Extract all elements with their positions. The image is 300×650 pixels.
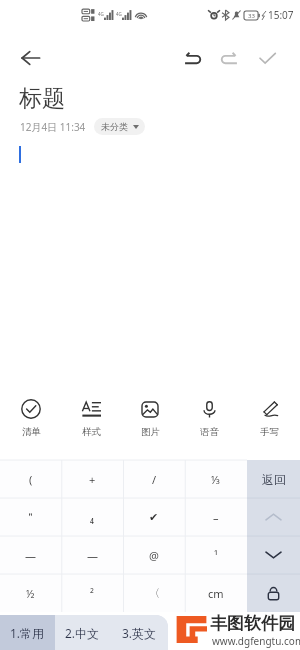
staticText: 样式 xyxy=(82,426,101,438)
button[interactable]: 返回 xyxy=(247,460,300,498)
staticText: 4G xyxy=(98,11,104,17)
button[interactable]: 未分类 xyxy=(94,118,145,135)
staticText: 未分类 xyxy=(101,121,128,132)
staticText: 语音 xyxy=(200,426,219,438)
staticText: 2.中文 xyxy=(65,625,100,641)
staticText: 1.常用 xyxy=(10,625,45,641)
button[interactable]: Back xyxy=(12,40,48,76)
staticText: ² xyxy=(90,586,94,601)
button[interactable]: 〈 xyxy=(123,574,185,612)
staticText: / xyxy=(152,472,157,487)
button[interactable]: ¹ xyxy=(185,536,247,574)
staticText: ¹ xyxy=(214,548,218,563)
staticText: @ xyxy=(149,548,159,563)
button[interactable]: ＂ xyxy=(0,498,61,536)
staticText: 图片 xyxy=(141,426,160,438)
button[interactable]: 图片 xyxy=(122,396,178,440)
button[interactable]: + xyxy=(61,460,123,498)
button[interactable]: — xyxy=(61,536,123,574)
button[interactable]: ₄ xyxy=(61,498,123,536)
button[interactable]: @ xyxy=(123,536,185,574)
staticText: 清单 xyxy=(22,426,41,438)
staticText: ₄ xyxy=(90,510,94,525)
button[interactable]: ⅓ xyxy=(185,460,247,498)
button[interactable]: ² xyxy=(61,574,123,612)
staticText: 4G xyxy=(116,11,122,17)
staticText: 12月4日 11:34 xyxy=(20,120,86,134)
button[interactable]: Scroll up xyxy=(247,498,300,536)
button[interactable]: ✔ xyxy=(123,498,185,536)
button[interactable]: 语音 xyxy=(181,396,237,440)
staticText: 15:07 xyxy=(268,8,294,22)
staticText: 丰图软件园 xyxy=(210,613,295,634)
button[interactable]: 1.常用 xyxy=(0,615,55,650)
button[interactable]: cm xyxy=(185,574,247,612)
button[interactable]: – xyxy=(185,498,247,536)
button[interactable]: 清单 xyxy=(3,396,59,440)
staticText: 3.英文 xyxy=(122,625,157,641)
button[interactable]: 2.中文 xyxy=(55,615,110,650)
button[interactable]: ( xyxy=(0,460,61,498)
staticText: 手写 xyxy=(260,426,279,438)
staticText: — xyxy=(87,548,98,563)
staticText: cm xyxy=(208,586,224,601)
staticText: + xyxy=(89,472,96,487)
button[interactable]: Redo xyxy=(212,41,246,75)
staticText: www.dgfengtu.com xyxy=(212,634,300,648)
button[interactable]: / xyxy=(123,460,185,498)
staticText: 33 xyxy=(248,12,255,20)
button[interactable]: Lock xyxy=(247,574,300,612)
button[interactable]: — xyxy=(0,536,61,574)
button[interactable]: 手写 xyxy=(241,396,297,440)
button[interactable]: 3.英文 xyxy=(110,615,168,650)
button[interactable]: Scroll down xyxy=(247,536,300,574)
staticText: ( xyxy=(29,472,33,487)
staticText: ＂ xyxy=(25,510,36,524)
button[interactable]: Save xyxy=(250,41,284,75)
button[interactable]: 样式 xyxy=(63,396,119,440)
staticText: ⅓ xyxy=(211,472,221,487)
staticText: – xyxy=(213,510,219,525)
staticText: ✔ xyxy=(149,511,159,524)
staticText: 〈 xyxy=(149,586,160,600)
button[interactable]: Undo xyxy=(176,41,210,75)
staticText: 标题 xyxy=(19,84,65,113)
staticText: ½ xyxy=(26,586,35,601)
button[interactable]: ½ xyxy=(0,574,61,612)
staticText: — xyxy=(25,548,36,563)
staticText: 返回 xyxy=(262,472,286,487)
